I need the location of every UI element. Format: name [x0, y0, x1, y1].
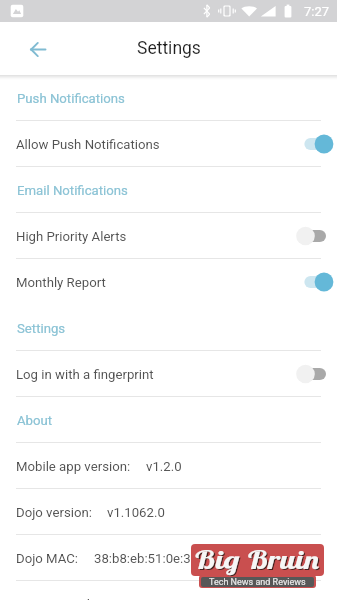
button[interactable]: Allow Push Notifications [0, 121, 337, 167]
button[interactable]: Log in with a fingerprint [0, 351, 337, 397]
staticText: Dojo internal IP: [16, 597, 109, 600]
staticText: Settings [137, 38, 201, 59]
staticText: Big Bruin [195, 545, 322, 576]
staticText: Allow Push Notifications [16, 137, 160, 152]
button[interactable]: Mobile app version: [0, 443, 337, 489]
staticText: Email Notifications [17, 183, 128, 198]
staticText: High Priority Alerts [16, 229, 127, 244]
staticText: Push Notifications [17, 91, 125, 106]
staticText: v1.1062.0 [107, 505, 165, 520]
staticText: Tech News and Reviews [209, 577, 306, 587]
staticText: About [17, 413, 53, 428]
staticText: Log in with a fingerprint [16, 367, 154, 382]
staticText: 38:b8:eb:51:0e:31 [94, 551, 199, 566]
staticText: Dojo version: [16, 505, 92, 520]
button[interactable]: Dojo internal IP: [0, 581, 337, 600]
staticText: Big Bruin [194, 544, 321, 575]
button[interactable]: Back [19, 30, 57, 68]
staticText: 7:27 [304, 4, 330, 19]
button[interactable]: High Priority Alerts [0, 213, 337, 259]
staticText: Settings [17, 321, 66, 336]
staticText: v1.2.0 [146, 459, 182, 474]
staticText: Monthly Report [16, 275, 106, 290]
button[interactable]: Monthly Report [0, 259, 337, 305]
button[interactable]: Dojo version: [0, 489, 337, 535]
button[interactable]: Dojo MAC: [0, 535, 337, 581]
staticText: Mobile app version: [16, 459, 131, 474]
staticText: Dojo MAC: [16, 551, 79, 566]
